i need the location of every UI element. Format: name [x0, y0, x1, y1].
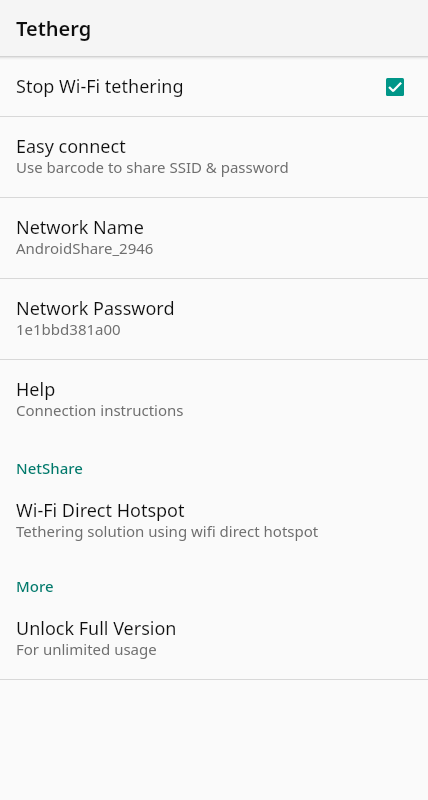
staticText: Tethering solution using wifi direct hot… [16, 521, 319, 541]
staticText: Stop Wi-Fi tethering [16, 74, 184, 99]
button[interactable]: Network Name [0, 198, 428, 278]
staticText: Unlock Full Version [16, 616, 177, 641]
staticText: Help [16, 377, 56, 402]
staticText: More [16, 576, 54, 596]
staticText: Tetherg [16, 15, 92, 42]
button[interactable]: Help [0, 360, 428, 440]
staticText: Use barcode to share SSID & password [16, 157, 289, 177]
staticText: 1e1bbd381a00 [16, 319, 121, 339]
button[interactable]: Unlock Full Version [0, 606, 428, 671]
staticText: For unlimited usage [16, 639, 157, 659]
staticText: Wi-Fi Direct Hotspot [16, 498, 185, 523]
other: Stop Wi-Fi tethering checkbox [386, 78, 404, 96]
staticText: Network Name [16, 215, 144, 240]
staticText: AndroidShare_2946 [16, 238, 154, 258]
staticText: NetShare [16, 458, 83, 478]
button[interactable]: Network Password [0, 279, 428, 359]
staticText: Easy connect [16, 134, 126, 159]
staticText: Connection instructions [16, 400, 184, 420]
button[interactable]: Wi-Fi Direct Hotspot [0, 488, 428, 553]
staticText: Network Password [16, 296, 175, 321]
button[interactable]: Easy connect [0, 117, 428, 197]
button[interactable]: Stop Wi-Fi tethering [0, 56, 428, 116]
